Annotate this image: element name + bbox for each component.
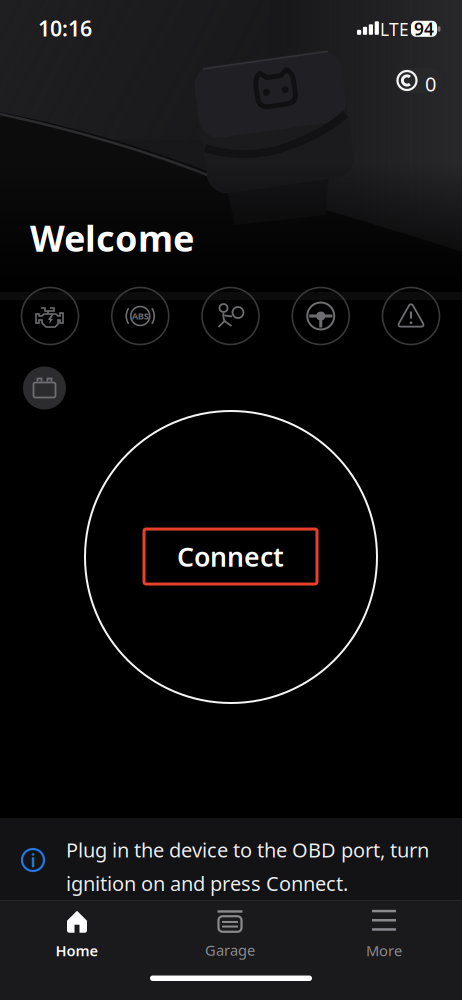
staticText: 0	[425, 70, 436, 97]
button[interactable]: Airbag	[202, 287, 259, 344]
staticText: More	[366, 941, 402, 960]
staticText: ABS	[132, 310, 149, 322]
button[interactable]: Battery	[23, 366, 66, 409]
button[interactable]: Connect	[144, 529, 317, 584]
staticText: 94	[414, 17, 434, 40]
button[interactable]: Steering	[292, 287, 349, 344]
staticText: Home	[55, 941, 98, 960]
staticText: Welcome	[30, 214, 194, 262]
button[interactable]: Coins	[395, 68, 441, 93]
button[interactable]: Engine	[21, 287, 78, 344]
staticText: ignition on and press Connect.	[66, 870, 348, 897]
button[interactable]: Warnings	[382, 287, 439, 344]
staticText: Plug in the device to the OBD port, turn	[66, 836, 429, 863]
button[interactable]: Garage	[180, 911, 280, 959]
button[interactable]: ABS	[112, 287, 169, 344]
staticText: Connect	[177, 539, 284, 574]
staticText: i	[30, 848, 35, 872]
staticText: Garage	[205, 940, 255, 960]
staticText: LTE	[380, 18, 409, 41]
button[interactable]: More	[334, 911, 434, 959]
staticText: 10:16	[38, 14, 92, 42]
button[interactable]: Home	[27, 911, 127, 959]
